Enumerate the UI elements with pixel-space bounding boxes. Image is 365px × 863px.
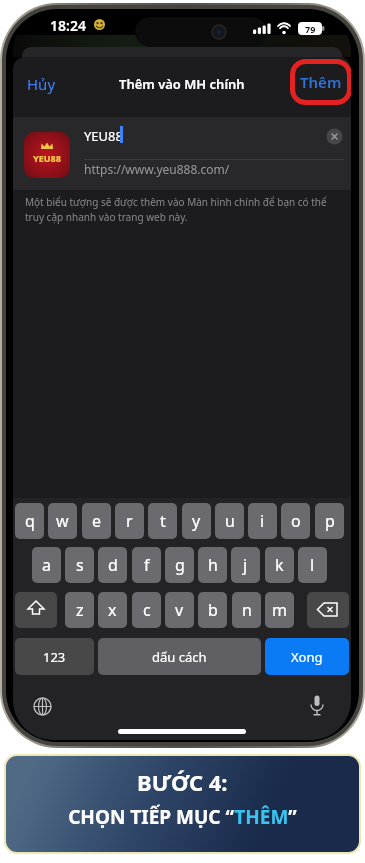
button[interactable]: l xyxy=(298,547,327,583)
button[interactable]: m xyxy=(265,592,294,628)
staticText: k xyxy=(275,554,284,576)
staticText: s xyxy=(76,554,84,576)
button[interactable] xyxy=(309,695,325,717)
button[interactable]: y xyxy=(182,503,211,539)
button[interactable]: w xyxy=(48,503,77,539)
staticText: 18:24 xyxy=(50,16,86,34)
button[interactable]: p xyxy=(315,503,344,539)
staticText: w xyxy=(56,510,69,532)
staticText: r xyxy=(126,510,133,532)
staticText: f xyxy=(144,554,150,576)
button[interactable] xyxy=(326,128,343,145)
staticText: a xyxy=(42,554,51,576)
staticText: e xyxy=(92,510,102,532)
staticText: 79 xyxy=(305,23,316,35)
button[interactable]: BƯỚC 4: xyxy=(4,754,361,854)
staticText: Thêm xyxy=(300,72,342,92)
button[interactable]: f xyxy=(132,547,161,583)
staticText: https://www.yeu888.com/ xyxy=(84,161,230,177)
button[interactable]: 123 xyxy=(15,638,94,675)
staticText: g xyxy=(175,554,185,576)
button[interactable]: d xyxy=(98,547,127,583)
button[interactable]: n xyxy=(232,592,261,628)
button[interactable]: u xyxy=(215,503,244,539)
staticText: q xyxy=(25,510,35,532)
staticText: m xyxy=(272,599,287,621)
staticText: p xyxy=(325,510,335,532)
button[interactable]: j xyxy=(231,547,260,583)
button[interactable]: k xyxy=(265,547,294,583)
button[interactable]: g xyxy=(165,547,194,583)
button[interactable]: s xyxy=(65,547,94,583)
button[interactable]: Thêm xyxy=(292,61,350,103)
button[interactable]: q xyxy=(15,503,44,539)
staticText: u xyxy=(225,510,235,532)
staticText: Xong xyxy=(291,648,323,666)
staticText: d xyxy=(108,554,118,576)
staticText: b xyxy=(208,599,218,621)
staticText: z xyxy=(76,599,84,621)
button[interactable]: x xyxy=(98,592,127,628)
staticText: o xyxy=(291,510,301,532)
button[interactable]: Hủy xyxy=(16,73,66,95)
staticText: h xyxy=(208,554,218,576)
button[interactable]: r xyxy=(115,503,144,539)
button[interactable]: v xyxy=(165,592,194,628)
staticText: j xyxy=(243,554,248,576)
button[interactable]: a xyxy=(32,547,61,583)
button[interactable] xyxy=(15,592,57,628)
button[interactable]: i xyxy=(248,503,277,539)
button[interactable]: b xyxy=(198,592,227,628)
staticText: c xyxy=(143,599,151,621)
staticText: Thêm vào MH chính xyxy=(119,75,245,93)
staticText: YEU88 xyxy=(33,152,61,164)
button[interactable]: h xyxy=(198,547,227,583)
staticText: CHỌN TIẾP MỤC “THÊM” xyxy=(68,804,297,830)
staticText: YEU88 xyxy=(84,127,123,145)
button[interactable]: c xyxy=(132,592,161,628)
button[interactable]: z xyxy=(65,592,94,628)
button[interactable]: o xyxy=(281,503,310,539)
button[interactable] xyxy=(307,592,349,628)
staticText: n xyxy=(242,599,252,621)
staticText: l xyxy=(310,554,315,576)
button[interactable]: e xyxy=(82,503,111,539)
staticText: i xyxy=(260,510,265,532)
staticText: v xyxy=(175,599,184,621)
button[interactable] xyxy=(33,697,52,716)
staticText: 123 xyxy=(43,648,66,666)
staticText: Một biểu tượng sẽ được thêm vào Màn hình… xyxy=(25,195,327,224)
staticText: x xyxy=(108,599,117,621)
button[interactable]: Xong xyxy=(265,638,349,675)
staticText: Hủy xyxy=(27,74,56,94)
staticText: BƯỚC 4: xyxy=(137,767,228,797)
staticText: dấu cách xyxy=(152,648,207,666)
button[interactable]: t xyxy=(148,503,177,539)
button[interactable]: dấu cách xyxy=(98,638,261,675)
staticText: t xyxy=(160,510,166,532)
staticText: y xyxy=(192,510,201,532)
